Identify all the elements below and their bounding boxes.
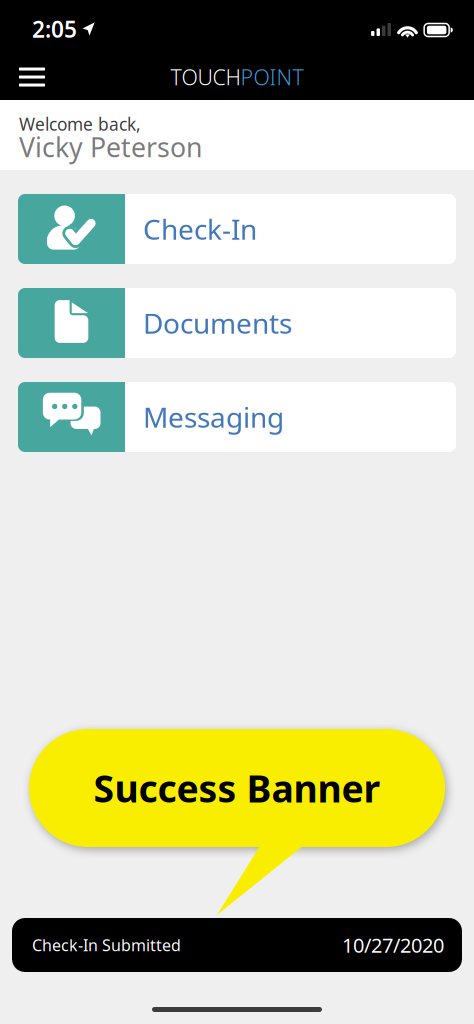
button[interactable]: Check-In	[18, 194, 456, 264]
button[interactable]: Messaging	[18, 382, 456, 452]
staticText: Vicky Peterson	[19, 129, 202, 165]
staticText: Check-In Submitted	[32, 934, 181, 956]
staticText: POINT	[240, 63, 303, 91]
staticText: Success Banner	[93, 763, 380, 813]
staticText: 10/27/2020	[342, 932, 444, 958]
button[interactable]: Menu	[5, 49, 59, 105]
staticText: Welcome back,	[19, 112, 141, 135]
staticText: Check-In	[143, 210, 257, 248]
button[interactable]: Documents	[18, 288, 456, 358]
staticText: Messaging	[143, 398, 284, 436]
staticText: 2:05	[32, 14, 77, 44]
staticText: Documents	[143, 304, 292, 342]
staticText: TOUCH	[170, 63, 240, 91]
